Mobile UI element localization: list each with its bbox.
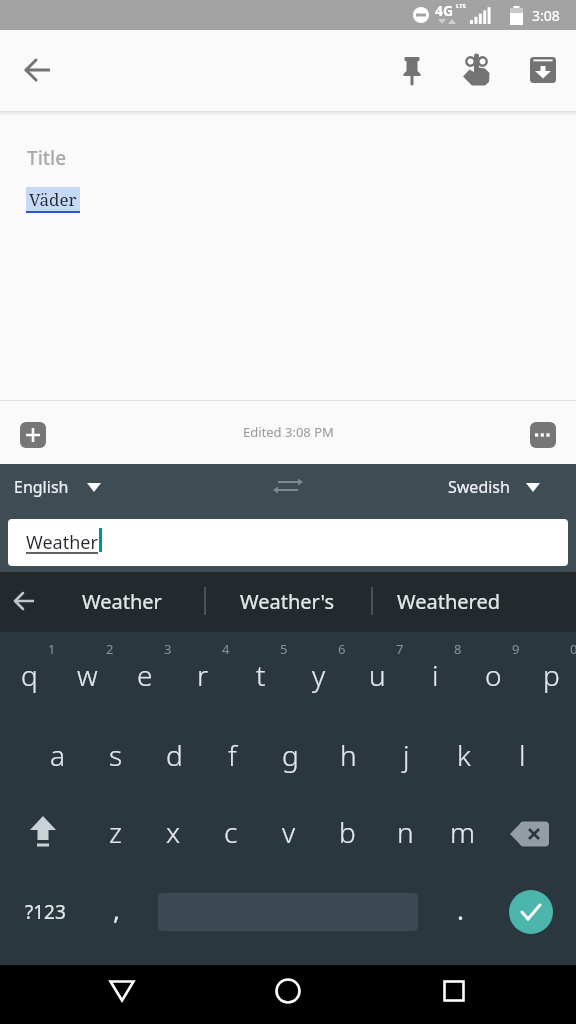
button[interactable]: Edited 3:08 PM: [243, 423, 334, 441]
staticText: n: [397, 813, 414, 851]
button[interactable]: b: [319, 802, 375, 862]
staticText: g: [282, 736, 299, 774]
button[interactable]: i: [407, 645, 463, 705]
staticText: b: [339, 813, 356, 851]
staticText: Weather: [26, 530, 98, 555]
button[interactable]: [502, 814, 558, 854]
staticText: j: [403, 736, 410, 774]
staticText: t: [256, 656, 266, 694]
button[interactable]: s: [88, 725, 144, 785]
staticText: d: [166, 736, 183, 774]
button[interactable]: q: [1, 645, 57, 705]
staticText: m: [450, 813, 476, 851]
button[interactable]: d: [146, 725, 202, 785]
staticText: ,: [113, 892, 120, 927]
staticText: Weather: [82, 588, 162, 615]
button[interactable]: Weathered: [368, 572, 528, 630]
staticText: r: [197, 656, 209, 694]
button[interactable]: Swedish: [448, 476, 540, 498]
button[interactable]: [16, 55, 60, 85]
staticText: l: [519, 736, 526, 774]
staticText: .: [457, 892, 464, 927]
staticText: Weathered: [397, 588, 500, 615]
staticText: s: [109, 736, 123, 774]
button[interactable]: y: [291, 645, 347, 705]
button[interactable]: v: [261, 802, 317, 862]
staticText: q: [21, 656, 38, 694]
staticText: 6: [338, 640, 346, 658]
button[interactable]: z: [87, 802, 143, 862]
button[interactable]: o: [465, 645, 521, 705]
staticText: o: [485, 656, 502, 694]
button[interactable]: .: [432, 887, 488, 931]
button[interactable]: [15, 812, 71, 856]
button[interactable]: Weather's: [205, 572, 370, 630]
staticText: LTE: [456, 2, 467, 10]
button[interactable]: g: [262, 725, 318, 785]
staticText: i: [432, 656, 439, 694]
staticText: 9: [512, 640, 520, 658]
button[interactable]: Väder: [26, 187, 80, 211]
staticText: 1: [48, 640, 56, 658]
button[interactable]: a: [30, 725, 86, 785]
staticText: h: [340, 736, 357, 774]
button[interactable]: h: [320, 725, 376, 785]
staticText: Swedish: [448, 476, 510, 498]
staticText: p: [543, 656, 560, 694]
button[interactable]: English: [14, 476, 101, 498]
button[interactable]: j: [378, 725, 434, 785]
staticText: ?123: [25, 899, 66, 925]
button[interactable]: t: [233, 645, 289, 705]
staticText: 3:08: [532, 6, 560, 25]
button[interactable]: w: [59, 645, 115, 705]
button[interactable]: m: [435, 802, 491, 862]
button[interactable]: u: [349, 645, 405, 705]
staticText: 7: [396, 640, 404, 658]
button[interactable]: r: [175, 645, 231, 705]
button[interactable]: [98, 969, 146, 1013]
button[interactable]: [509, 890, 553, 934]
button[interactable]: Title: [27, 145, 67, 171]
button[interactable]: Weather: [8, 519, 568, 566]
staticText: c: [224, 813, 238, 851]
staticText: 4G: [435, 1, 454, 20]
button[interactable]: k: [436, 725, 492, 785]
staticText: e: [137, 656, 153, 694]
staticText: 3: [164, 640, 172, 658]
button[interactable]: l: [494, 725, 550, 785]
staticText: y: [312, 656, 326, 694]
staticText: x: [166, 813, 181, 851]
button[interactable]: p: [523, 645, 576, 705]
button[interactable]: ?123: [12, 890, 78, 934]
staticText: 8: [454, 640, 462, 658]
staticText: English: [14, 476, 69, 498]
staticText: 4: [222, 640, 230, 658]
staticText: w: [77, 656, 98, 694]
button[interactable]: [20, 422, 46, 448]
staticText: a: [50, 736, 66, 774]
button[interactable]: [6, 586, 42, 616]
button[interactable]: [460, 50, 494, 90]
button[interactable]: [272, 474, 304, 498]
button[interactable]: [530, 422, 556, 448]
staticText: Väder: [29, 188, 77, 211]
staticText: f: [228, 736, 237, 774]
button[interactable]: [430, 969, 478, 1013]
button[interactable]: c: [203, 802, 259, 862]
button[interactable]: Weather: [40, 572, 204, 630]
button[interactable]: x: [145, 802, 201, 862]
staticText: Weather's: [240, 588, 335, 615]
button[interactable]: n: [377, 802, 433, 862]
button[interactable]: [264, 969, 312, 1013]
staticText: k: [457, 736, 471, 774]
staticText: v: [282, 813, 296, 851]
staticText: z: [109, 813, 122, 851]
button[interactable]: ,: [88, 887, 144, 931]
button[interactable]: [396, 52, 428, 88]
button[interactable]: e: [117, 645, 173, 705]
staticText: 5: [280, 640, 288, 658]
button[interactable]: [528, 56, 558, 84]
staticText: u: [369, 656, 386, 694]
button[interactable]: f: [204, 725, 260, 785]
